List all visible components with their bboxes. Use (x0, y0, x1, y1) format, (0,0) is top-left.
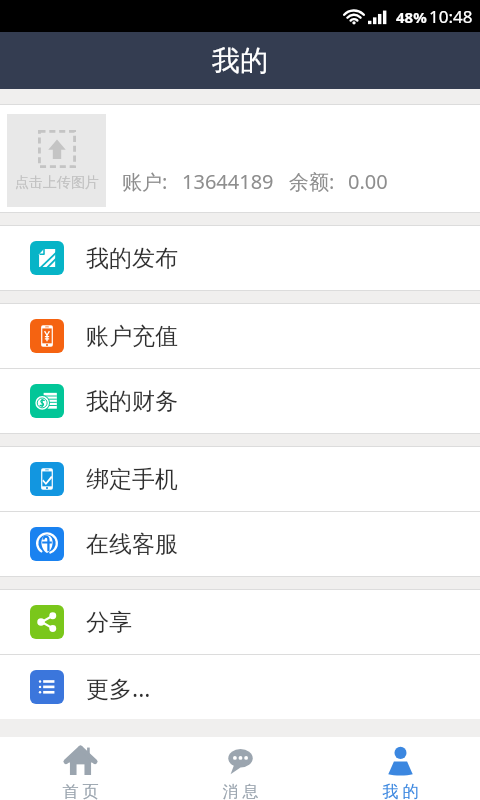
staticText: 我的发布 (86, 244, 178, 273)
button[interactable]: 绑定手机 (0, 447, 480, 511)
button[interactable]: 首 页 (0, 737, 160, 800)
button[interactable]: 账户充值 (0, 304, 480, 368)
staticText: 首 页 (62, 780, 99, 800)
staticText: 我的 (212, 43, 268, 78)
staticText: 消 息 (222, 780, 259, 800)
staticText: 我 的 (382, 780, 419, 800)
staticText: 13644189 (182, 168, 274, 195)
staticText: 点击上传图片 (15, 174, 99, 192)
button[interactable]: 分享 (0, 590, 480, 654)
button[interactable]: 消 息 (160, 737, 320, 800)
staticText: 48% (396, 7, 427, 27)
staticText: 余额: (289, 168, 335, 195)
staticText: 我的财务 (86, 387, 178, 416)
button[interactable]: 在线客服 (0, 512, 480, 576)
staticText: 分享 (86, 608, 132, 637)
staticText: 在线客服 (86, 530, 178, 559)
button[interactable]: 我的财务 (0, 369, 480, 433)
staticText: 0.00 (348, 168, 388, 195)
staticText: 10:48 (429, 5, 473, 28)
staticText: 绑定手机 (86, 465, 178, 494)
button[interactable]: 我的发布 (0, 226, 480, 290)
button[interactable]: 更多... (0, 655, 480, 719)
button[interactable]: 点击上传图片 (7, 114, 106, 207)
staticText: 账户: (122, 168, 168, 195)
button[interactable]: 我 的 (320, 737, 480, 800)
staticText: 账户充值 (86, 322, 178, 351)
staticText: 更多... (86, 672, 151, 703)
